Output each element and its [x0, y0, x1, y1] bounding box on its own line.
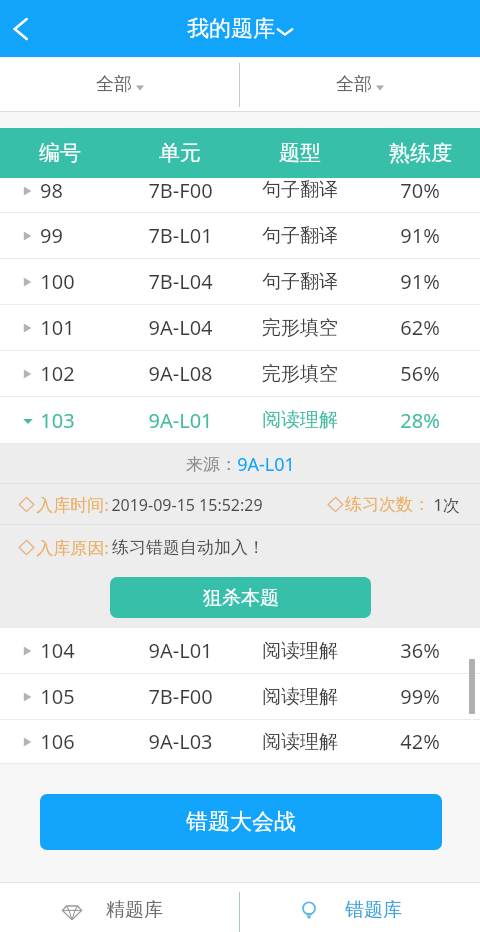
button[interactable]: 全部	[0, 57, 239, 112]
staticText: 9A-L08	[148, 360, 213, 387]
staticText: 100	[40, 268, 75, 295]
staticText: 熟练度	[389, 140, 452, 166]
staticText: 完形填空	[262, 316, 338, 340]
button[interactable]: 100	[0, 259, 480, 305]
staticText: 狙杀本题	[203, 586, 279, 610]
staticText: 28%	[400, 407, 440, 434]
staticText: 98	[40, 177, 63, 204]
staticText: 编号	[39, 140, 81, 166]
button[interactable]: Back	[0, 0, 42, 57]
staticText: 单元	[159, 140, 201, 166]
staticText: 入库时间:	[36, 493, 109, 516]
staticText: 阅读理解	[262, 408, 338, 432]
staticText: 9A-L01	[148, 407, 213, 434]
staticText: 106	[40, 728, 75, 755]
staticText: 题型	[279, 140, 321, 166]
staticText: 7B-F00	[148, 177, 213, 204]
staticText: 阅读理解	[262, 730, 338, 754]
button[interactable]: 精题库	[0, 885, 239, 932]
staticText: 7B-L04	[148, 268, 213, 295]
staticText: 练习错题自动加入！	[112, 537, 265, 558]
staticText: 9A-L04	[148, 314, 213, 341]
button[interactable]: 104	[0, 628, 480, 674]
staticText: 错题库	[345, 898, 402, 922]
staticText: 36%	[400, 637, 440, 664]
staticText: 句子翻译	[262, 178, 338, 202]
button[interactable]: 狙杀本题	[110, 577, 371, 618]
staticText: 70%	[400, 177, 440, 204]
button[interactable]: 103	[0, 397, 480, 444]
staticText: 7B-F00	[148, 683, 213, 710]
staticText: 精题库	[106, 898, 163, 922]
staticText: 阅读理解	[262, 639, 338, 663]
button[interactable]: 错题大会战	[40, 794, 442, 850]
staticText: 入库原因:	[36, 536, 109, 559]
staticText: 阅读理解	[262, 685, 338, 709]
staticText: 56%	[400, 360, 440, 387]
button[interactable]: 错题库	[240, 885, 480, 932]
button[interactable]: 105	[0, 674, 480, 720]
staticText: 99	[40, 222, 63, 249]
button[interactable]: 102	[0, 351, 480, 397]
staticText: 句子翻译	[262, 224, 338, 248]
staticText: 句子翻译	[262, 270, 338, 294]
staticText: 91%	[400, 222, 440, 249]
button[interactable]: 98	[0, 178, 480, 213]
staticText: 完形填空	[262, 362, 338, 386]
staticText: 全部	[336, 73, 372, 96]
button[interactable]: 我的题库	[187, 15, 294, 43]
staticText: 91%	[400, 268, 440, 295]
staticText: 1次	[433, 493, 460, 516]
button[interactable]: 全部	[240, 57, 480, 112]
staticText: 9A-L03	[148, 728, 213, 755]
staticText: 来源：	[186, 454, 237, 475]
staticText: 9A-L01	[237, 452, 295, 477]
staticText: 103	[40, 407, 75, 434]
staticText: 62%	[400, 314, 440, 341]
staticText: 99%	[400, 683, 440, 710]
staticText: 练习次数：	[345, 494, 430, 515]
staticText: 7B-L01	[148, 222, 213, 249]
staticText: 101	[40, 314, 75, 341]
staticText: 全部	[96, 73, 132, 96]
button[interactable]: 99	[0, 213, 480, 259]
button[interactable]: 106	[0, 720, 480, 764]
staticText: 9A-L01	[148, 637, 213, 664]
staticText: 42%	[400, 728, 440, 755]
staticText: 104	[40, 637, 75, 664]
button[interactable]: 101	[0, 305, 480, 351]
staticText: 2019-09-15 15:52:29	[111, 494, 263, 516]
staticText: 我的题库	[187, 15, 275, 43]
staticText: 105	[40, 683, 75, 710]
staticText: 102	[40, 360, 75, 387]
staticText: 错题大会战	[186, 808, 296, 836]
